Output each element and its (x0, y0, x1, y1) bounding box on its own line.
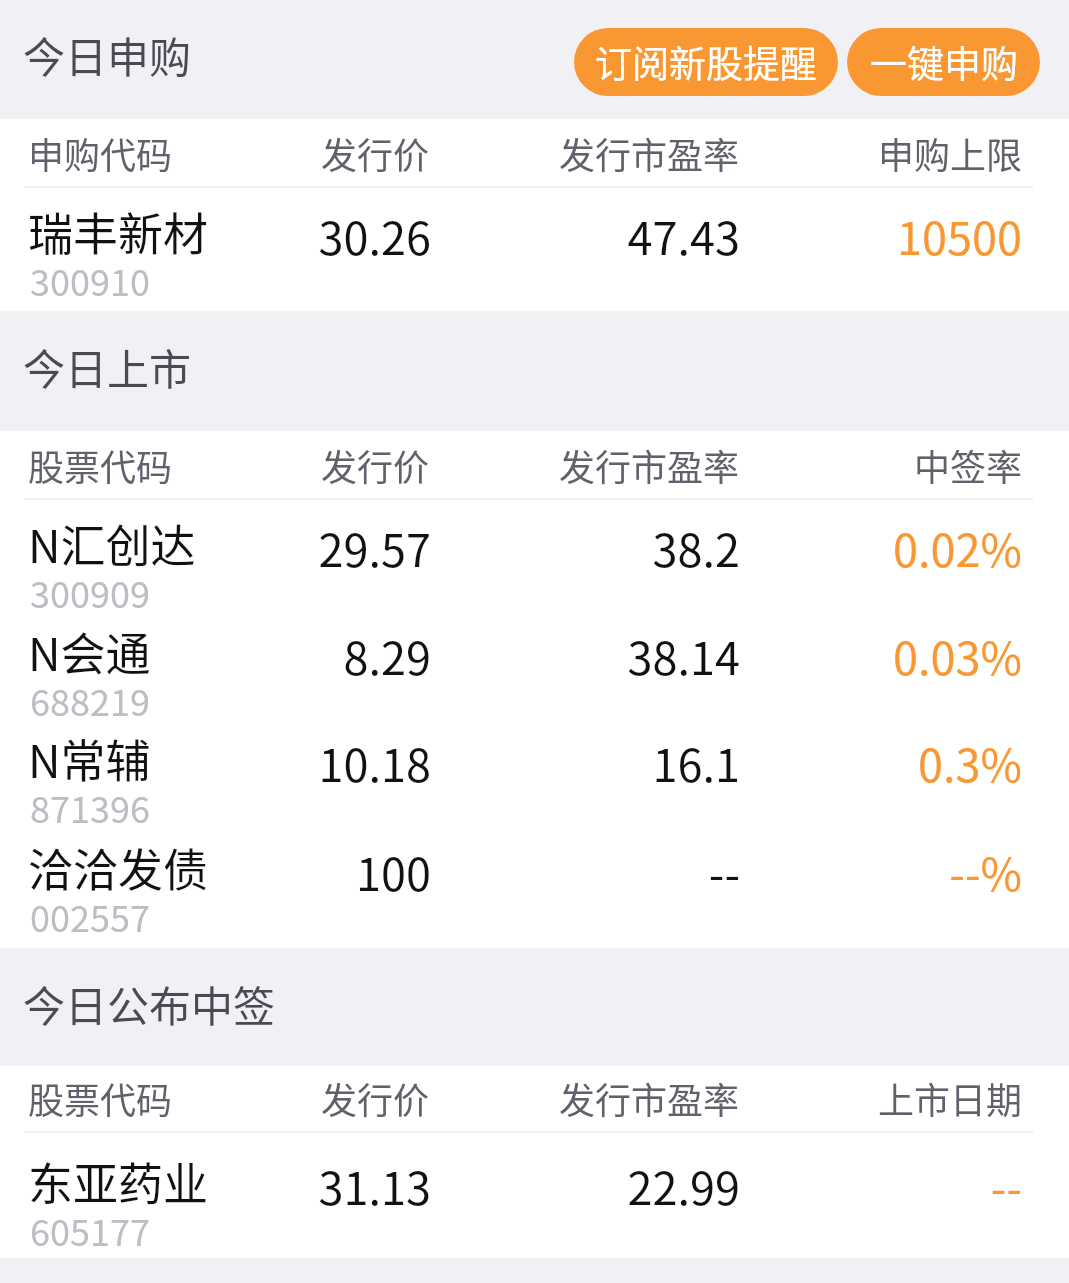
button[interactable]: 洽洽发债 (0, 823, 1069, 931)
staticText: N常辅 (28, 726, 151, 791)
staticText: 发行市盈率 (0, 127, 739, 179)
staticText: 871396 (30, 781, 150, 833)
staticText: 29.57 (0, 515, 431, 580)
staticText: 100 (0, 839, 431, 904)
staticText: 股票代码 (28, 1072, 173, 1124)
button[interactable]: 瑞丰新材 (0, 187, 1069, 295)
staticText: -- (0, 839, 740, 904)
staticText: --% (0, 839, 1022, 904)
staticText: 8.29 (0, 623, 431, 688)
staticText: 38.2 (0, 515, 740, 580)
staticText: 38.14 (0, 623, 740, 688)
staticText: 002557 (30, 890, 150, 942)
button[interactable]: N会通 (0, 607, 1069, 715)
staticText: 今日上市 (23, 336, 192, 397)
staticText: 30.26 (0, 203, 431, 268)
staticText: 发行市盈率 (0, 1072, 739, 1124)
staticText: 发行市盈率 (0, 439, 739, 491)
staticText: 300910 (30, 254, 150, 306)
staticText: 洽洽发债 (28, 835, 209, 900)
staticText: 一键申购 (870, 35, 1018, 89)
staticText: 今日申购 (23, 24, 192, 85)
staticText: 688219 (30, 674, 150, 726)
staticText: 发行价 (0, 439, 429, 491)
staticText: 订阅新股提醒 (595, 35, 817, 89)
button[interactable]: 东亚药业 (0, 1137, 1069, 1245)
button[interactable]: 订阅新股提醒 (574, 28, 838, 96)
button[interactable]: N汇创达 (0, 499, 1069, 607)
staticText: N会通 (28, 619, 151, 684)
staticText: 47.43 (0, 203, 740, 268)
staticText: -- (0, 1153, 1022, 1218)
staticText: 300909 (30, 566, 150, 618)
staticText: 31.13 (0, 1153, 431, 1218)
staticText: 0.02% (0, 515, 1022, 580)
button[interactable]: N常辅 (0, 714, 1069, 822)
staticText: 0.3% (0, 730, 1022, 795)
staticText: 股票代码 (28, 439, 173, 491)
staticText: 今日公布中签 (23, 973, 276, 1034)
staticText: 中签率 (0, 439, 1022, 491)
staticText: 0.03% (0, 623, 1022, 688)
staticText: 发行价 (0, 1072, 429, 1124)
staticText: 605177 (30, 1204, 150, 1256)
staticText: 申购上限 (0, 127, 1022, 179)
staticText: 东亚药业 (28, 1149, 209, 1214)
staticText: N汇创达 (28, 511, 196, 576)
staticText: 10500 (0, 203, 1022, 268)
staticText: 10.18 (0, 730, 431, 795)
staticText: 申购代码 (28, 127, 173, 179)
staticText: 瑞丰新材 (28, 199, 209, 264)
staticText: 发行价 (0, 127, 429, 179)
staticText: 上市日期 (0, 1072, 1022, 1124)
button[interactable]: 一键申购 (847, 28, 1040, 96)
staticText: 16.1 (0, 730, 740, 795)
staticText: 22.99 (0, 1153, 740, 1218)
